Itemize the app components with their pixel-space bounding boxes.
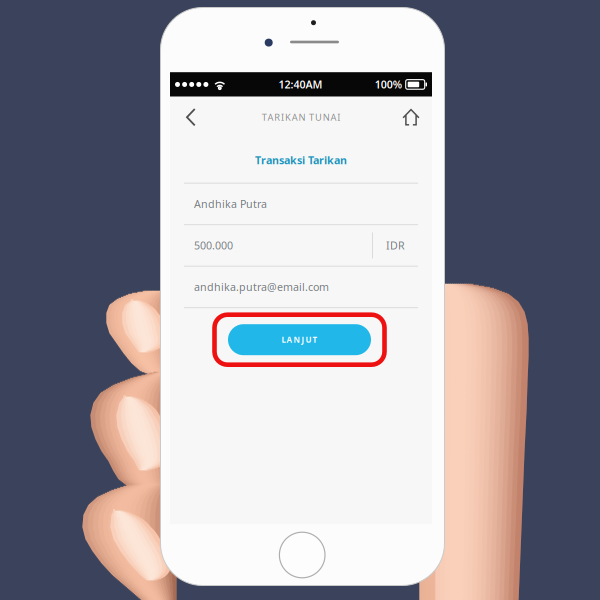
staticText: TARIKAN TUNAI — [262, 111, 340, 123]
staticText: Andhika Putra — [194, 197, 267, 211]
button[interactable]: L A N J U T — [228, 324, 371, 355]
staticText: 12:40AM — [278, 77, 322, 92]
button[interactable]: Back — [176, 97, 206, 138]
staticText: IDR — [386, 238, 405, 253]
staticText: Transaksi Tarikan — [255, 153, 347, 167]
button[interactable]: Home — [396, 97, 426, 138]
staticText: 500.000 — [194, 238, 233, 253]
staticText: andhika.putra@email.com — [194, 280, 329, 294]
staticText: L A N J U T — [281, 334, 317, 345]
staticText: 100% — [375, 77, 402, 92]
